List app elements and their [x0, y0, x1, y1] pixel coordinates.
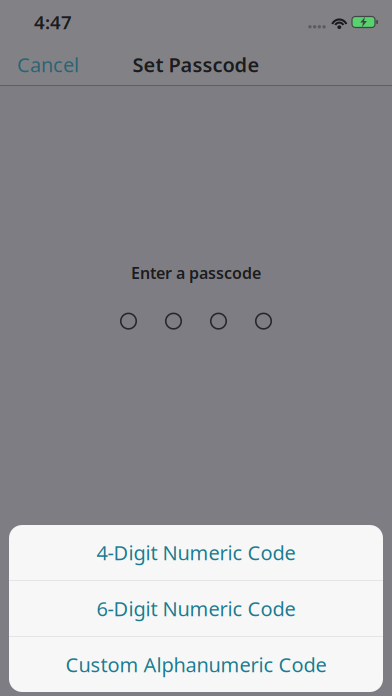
staticText: Set Passcode [132, 51, 259, 78]
button[interactable]: 4-Digit Numeric Code [9, 525, 383, 580]
staticText: 4-Digit Numeric Code [96, 539, 295, 566]
staticText: Cancel [17, 51, 79, 78]
button[interactable]: 6-Digit Numeric Code [9, 581, 383, 636]
staticText: Enter a passcode [131, 262, 261, 283]
staticText: 6-Digit Numeric Code [96, 595, 295, 622]
staticText: 4:47 [34, 10, 72, 34]
button[interactable]: Cancel [0, 44, 91, 85]
button[interactable]: Custom Alphanumeric Code [9, 637, 383, 692]
staticText: Custom Alphanumeric Code [65, 651, 326, 678]
